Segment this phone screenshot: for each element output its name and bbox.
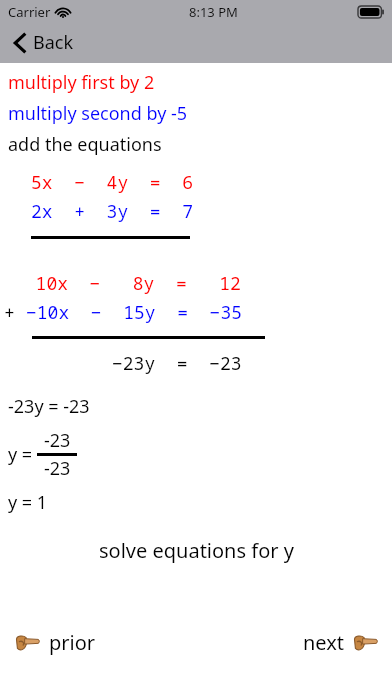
staticText: y = xyxy=(8,442,37,467)
staticText: −23y = −23 xyxy=(112,351,242,376)
staticText: -23y = -23 xyxy=(8,394,90,419)
button[interactable]: Pointing hand xyxy=(0,625,104,660)
staticText: prior xyxy=(49,629,96,656)
staticText: -23 xyxy=(44,456,71,481)
staticText: 10x − 8y = 12 xyxy=(14,271,241,296)
other: Pointing hand xyxy=(16,634,40,652)
staticText: multiply first by 2 xyxy=(8,70,155,95)
staticText: add the equations xyxy=(8,132,162,157)
staticText: Back xyxy=(33,30,74,55)
staticText: next xyxy=(303,629,345,656)
button[interactable]: next xyxy=(295,625,392,660)
other: Pointing hand xyxy=(354,634,378,652)
staticText: -23 xyxy=(44,428,71,453)
staticText: 8:13 PM xyxy=(189,3,238,21)
staticText: y = 1 xyxy=(8,490,48,515)
button[interactable]: Back xyxy=(8,26,80,59)
staticText: + xyxy=(4,300,26,325)
staticText: 5x − 4y = 6 xyxy=(31,170,193,195)
staticText: solve equations for y xyxy=(99,537,294,564)
staticText: Carrier xyxy=(8,3,51,21)
staticText: multiply second by -5 xyxy=(8,101,188,126)
staticText: 2x + 3y = 7 xyxy=(31,199,193,224)
staticText: −10x − 15y = −35 xyxy=(26,300,242,325)
